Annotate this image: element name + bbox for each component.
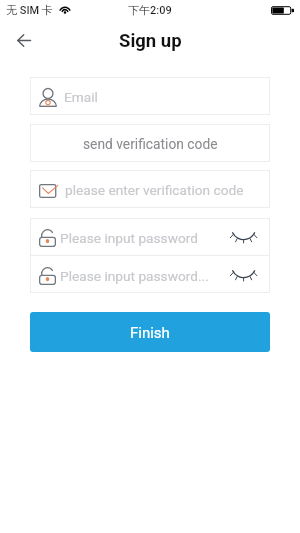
button[interactable]: send verification code <box>30 124 270 162</box>
button[interactable]: Show password <box>229 264 258 286</box>
staticText: send verification code <box>83 136 218 152</box>
staticText: Please input password <box>60 230 198 246</box>
button[interactable]: Finish <box>30 312 270 352</box>
button[interactable]: Email <box>30 77 270 115</box>
staticText: 下午2:09 <box>128 3 172 17</box>
staticText: Sign up <box>119 30 182 52</box>
button[interactable]: Please input password <box>30 218 270 255</box>
button[interactable]: please enter verification code <box>30 170 270 208</box>
button[interactable]: Please input password... <box>30 256 270 293</box>
staticText: Please input password... <box>60 268 209 284</box>
button[interactable]: Show password <box>229 226 258 248</box>
staticText: Email <box>64 89 98 105</box>
staticText: Finish <box>130 324 170 342</box>
button[interactable]: Back <box>12 28 36 52</box>
staticText: please enter verification code <box>65 182 244 198</box>
staticText: 无 SIM 卡 <box>6 3 53 17</box>
